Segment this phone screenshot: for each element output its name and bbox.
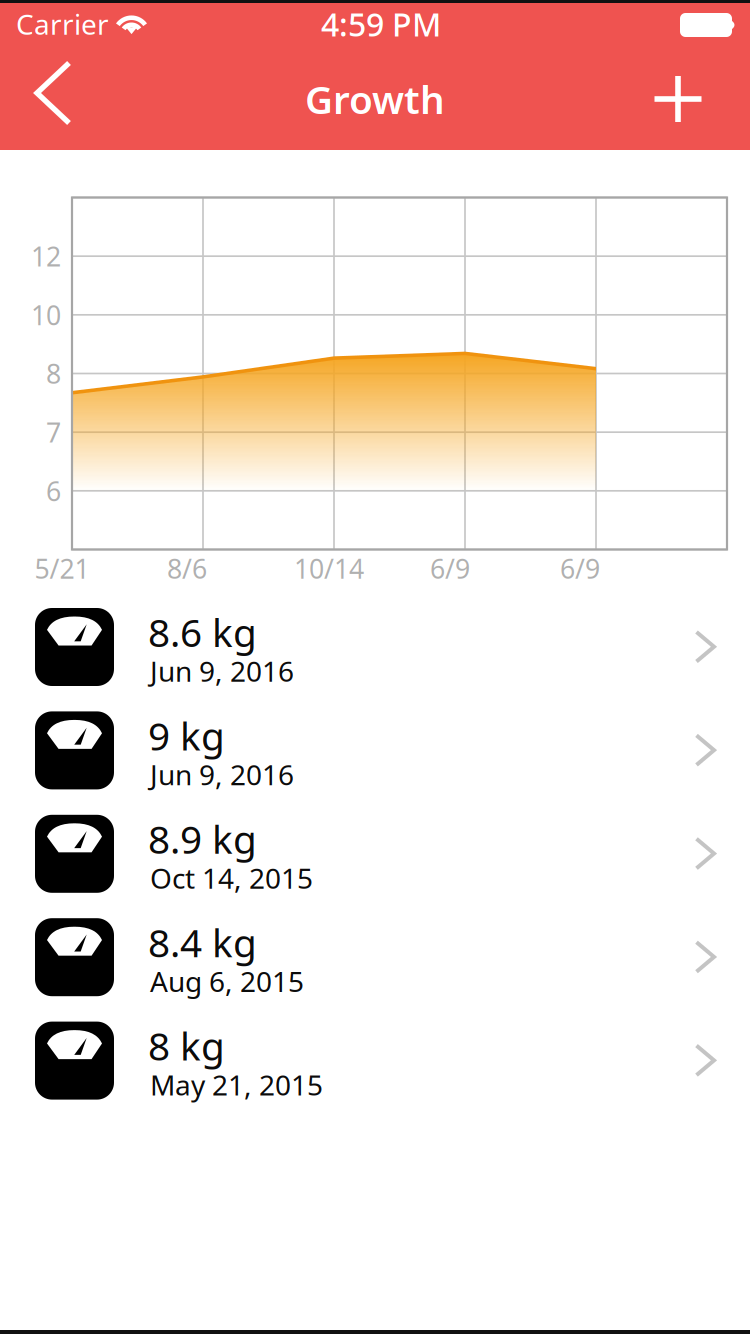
button[interactable]: 8.4 kg — [0, 906, 750, 1010]
staticText: 4:59 PM — [321, 3, 441, 45]
staticText: Jun 9, 2016 — [150, 756, 294, 793]
button[interactable]: 9 kg — [0, 699, 750, 803]
staticText: 5/21 — [34, 551, 89, 586]
staticText: 7 — [46, 414, 61, 450]
staticText: 8.6 kg — [148, 606, 257, 658]
staticText: May 21, 2015 — [150, 1066, 323, 1103]
staticText: 8 kg — [148, 1020, 225, 1071]
button[interactable]: 8.6 kg — [0, 596, 750, 699]
staticText: 6/9 — [430, 551, 470, 586]
staticText: 10 — [31, 297, 61, 332]
button[interactable]: Back — [4, 48, 100, 138]
staticText: 8/6 — [167, 551, 207, 586]
button[interactable]: 8.9 kg — [0, 803, 750, 906]
staticText: 12 — [31, 238, 61, 274]
button[interactable]: Add — [630, 55, 726, 143]
staticText: Oct 14, 2015 — [150, 859, 313, 896]
staticText: Carrier — [16, 5, 109, 43]
staticText: 6 — [46, 473, 61, 508]
staticText: 10/14 — [294, 551, 364, 586]
staticText: 6/9 — [560, 551, 600, 586]
staticText: Aug 6, 2015 — [150, 963, 304, 1000]
button[interactable]: 8 kg — [0, 1010, 750, 1113]
staticText: Growth — [305, 73, 445, 125]
staticText: 9 kg — [148, 710, 225, 761]
staticText: 8.4 kg — [148, 916, 257, 968]
staticText: 8.9 kg — [148, 813, 257, 864]
staticText: Jun 9, 2016 — [150, 652, 294, 690]
staticText: 8 — [46, 356, 61, 391]
